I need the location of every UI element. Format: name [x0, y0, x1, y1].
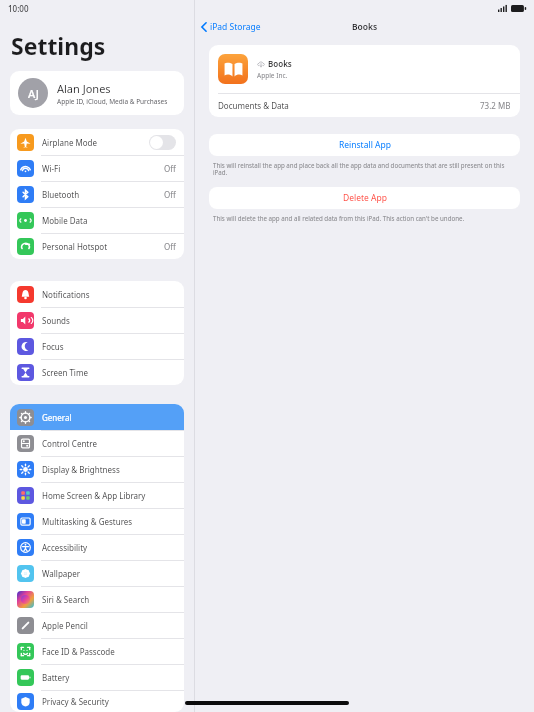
staticText: Settings [11, 30, 106, 61]
staticText: Siri & Search [42, 594, 90, 605]
staticText: Focus [42, 341, 64, 352]
button[interactable]: Reinstall App [209, 134, 520, 156]
button[interactable]: Airplane Mode [10, 129, 184, 155]
staticText: Notifications [42, 289, 90, 300]
button[interactable]: Siri & Search [10, 586, 184, 612]
staticText: This will reinstall the app and place ba… [213, 161, 516, 177]
staticText: This will delete the app and all related… [213, 214, 516, 222]
staticText: Wi-Fi [42, 163, 61, 174]
button[interactable]: AJ [10, 71, 184, 115]
button[interactable]: Multitasking & Gestures [10, 508, 184, 534]
staticText: Control Centre [42, 438, 97, 449]
button[interactable]: Airplane Mode toggle [149, 135, 176, 150]
button[interactable]: Mobile Data [10, 207, 184, 233]
button[interactable]: Display & Brightness [10, 456, 184, 482]
button[interactable]: Delete App [209, 187, 520, 209]
button[interactable]: Wallpaper [10, 560, 184, 586]
button[interactable]: Sounds [10, 307, 184, 333]
button[interactable]: Notifications [10, 281, 184, 307]
staticText: Multitasking & Gestures [42, 516, 133, 527]
staticText: Off [164, 163, 176, 174]
staticText: Screen Time [42, 367, 88, 378]
staticText: Delete App [343, 192, 387, 204]
staticText: Wallpaper [42, 568, 81, 579]
button[interactable]: Wi-Fi [10, 155, 184, 181]
staticText: Apple Pencil [42, 620, 88, 631]
staticText: Apple ID, iCloud, Media & Purchases [57, 97, 168, 106]
button[interactable]: Privacy & Security [10, 690, 184, 712]
button[interactable]: Home Screen & App Library [10, 482, 184, 508]
button[interactable]: Bluetooth [10, 181, 184, 207]
staticText: Apple Inc. [257, 71, 288, 80]
button[interactable]: Control Centre [10, 430, 184, 456]
staticText: General [42, 412, 72, 423]
button[interactable]: Battery [10, 664, 184, 690]
button[interactable]: Apple Pencil [10, 612, 184, 638]
staticText: Off [164, 189, 176, 200]
staticText: Airplane Mode [42, 137, 98, 148]
staticText: Alan Jones [57, 81, 111, 96]
button[interactable]: Personal Hotspot [10, 233, 184, 259]
staticText: Battery [42, 672, 70, 683]
staticText: Mobile Data [42, 215, 88, 226]
staticText: Bluetooth [42, 189, 80, 200]
staticText: 73.2 MB [480, 100, 511, 111]
button[interactable]: Screen Time [10, 359, 184, 385]
staticText: 10:00 [8, 3, 29, 14]
button[interactable]: Face ID & Passcode [10, 638, 184, 664]
button[interactable]: Focus [10, 333, 184, 359]
staticText: Reinstall App [339, 139, 391, 151]
staticText: Off [164, 241, 176, 252]
staticText: AJ [28, 86, 39, 101]
button[interactable]: iPad Storage [195, 19, 267, 35]
staticText: Home Screen & App Library [42, 490, 146, 501]
staticText: Documents & Data [218, 100, 289, 111]
staticText: Display & Brightness [42, 464, 120, 475]
staticText: Accessibility [42, 542, 88, 553]
staticText: Books [268, 58, 292, 69]
staticText: Sounds [42, 315, 70, 326]
staticText: Personal Hotspot [42, 241, 108, 252]
staticText: Privacy & Security [42, 696, 109, 707]
staticText: iPad Storage [210, 21, 261, 33]
button[interactable]: Accessibility [10, 534, 184, 560]
staticText: Face ID & Passcode [42, 646, 115, 657]
staticText: Books [352, 21, 378, 33]
button[interactable]: General [10, 404, 184, 430]
